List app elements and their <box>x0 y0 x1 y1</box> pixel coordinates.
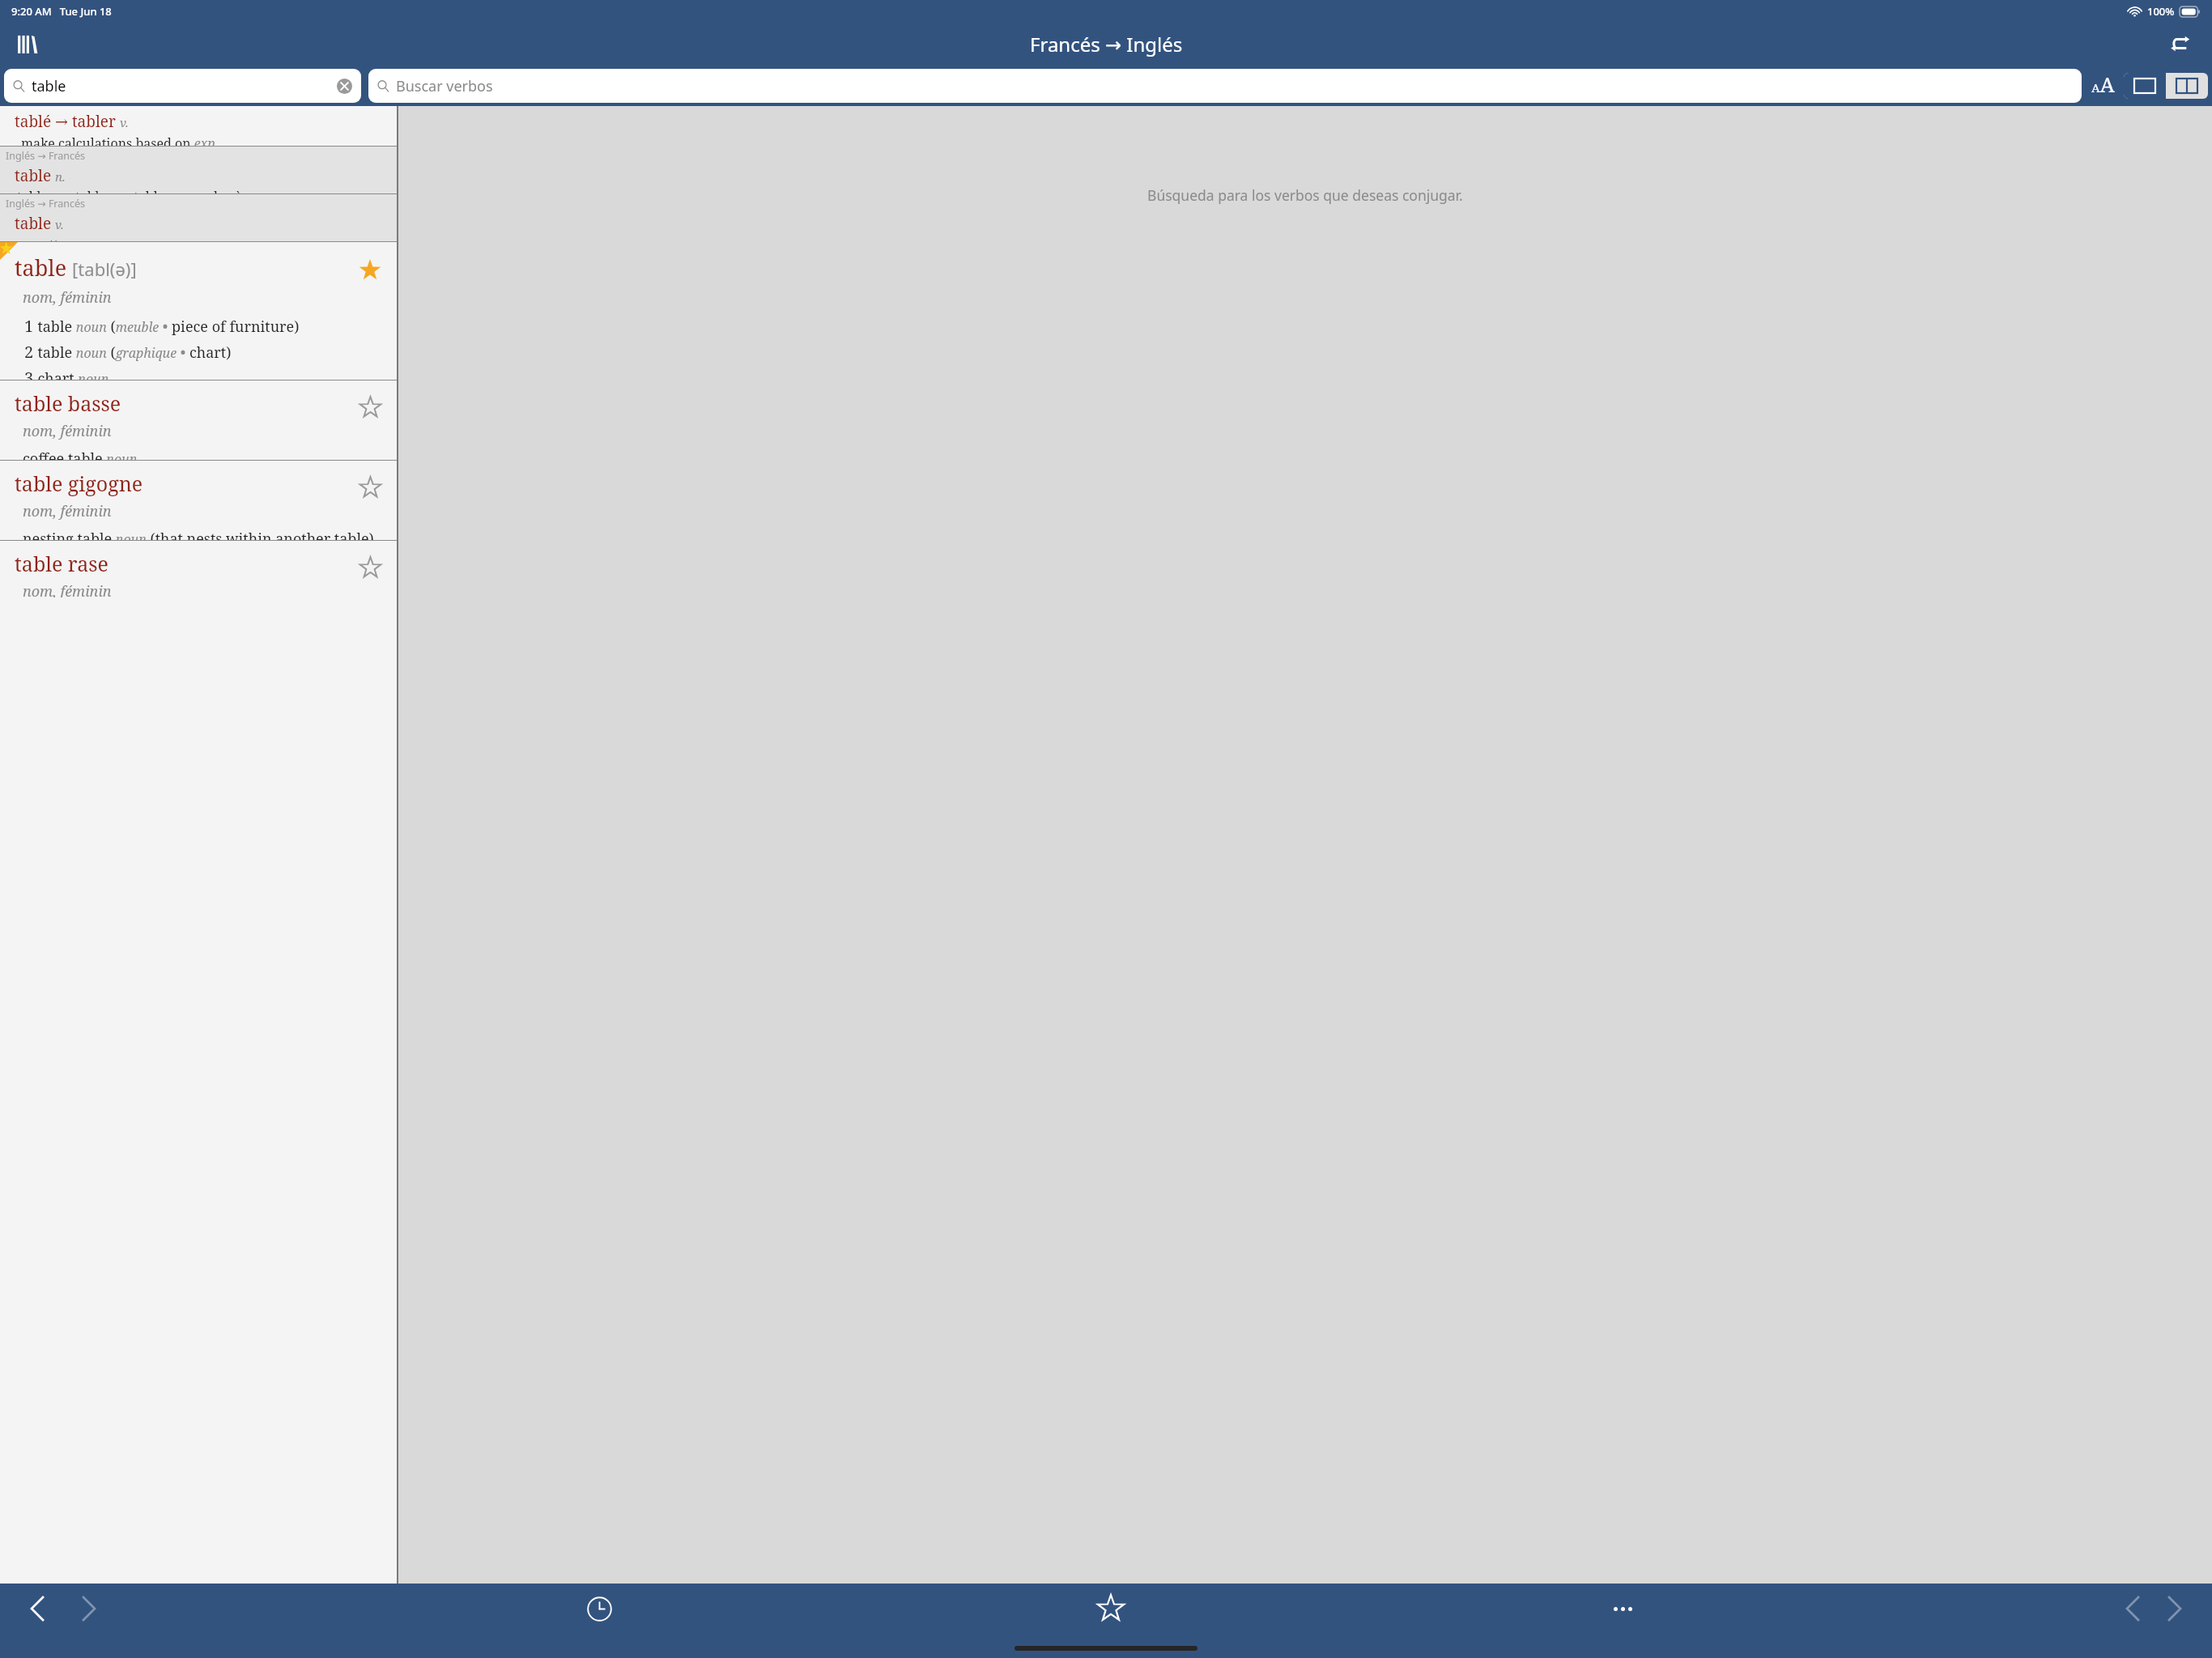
button[interactable]: History <box>576 1586 622 1631</box>
staticText: nom, féminin <box>23 287 112 308</box>
button[interactable]: Inglés → Francés <box>0 194 397 241</box>
button[interactable]: Clear search <box>336 78 352 94</box>
staticText: 1 table noun (meuble • piece of furnitur… <box>24 315 300 337</box>
button[interactable]: table basse <box>0 380 397 460</box>
staticText: table n. f., table n. f., tableau n. m.,… <box>17 188 289 193</box>
staticText: make calculations based on exp. <box>21 134 219 146</box>
button[interactable]: More options <box>1600 1586 1645 1631</box>
staticText: table rase <box>15 550 108 577</box>
button[interactable]: table gigogne <box>0 461 397 540</box>
staticText: 2 table noun (graphique • chart) <box>24 341 232 363</box>
staticText: AA <box>2091 70 2115 98</box>
staticText: 3 chart noun <box>24 367 109 380</box>
button[interactable]: Back <box>16 1588 58 1630</box>
button[interactable]: table <box>4 69 361 103</box>
staticText: table gigogne <box>15 470 143 497</box>
button[interactable]: Next entry <box>2154 1588 2196 1630</box>
button[interactable]: Split pane <box>2166 73 2208 99</box>
button[interactable]: table [tabl(ə)] <box>0 242 397 380</box>
button[interactable]: Inglés → Francés <box>0 147 397 193</box>
staticText: Inglés → Francés <box>6 197 86 210</box>
staticText: table <box>32 76 66 96</box>
staticText: table basse <box>15 389 121 417</box>
staticText: 9:20 AM Tue Jun 18 <box>11 4 112 19</box>
staticText: Inglés → Francés <box>6 149 86 163</box>
button[interactable]: table rase <box>0 541 397 597</box>
staticText: nesting table noun (that nests within an… <box>23 529 374 540</box>
button[interactable]: Favourites <box>1088 1586 1134 1631</box>
staticText: coffee table noun <box>23 449 138 460</box>
button[interactable]: Remove from favourites <box>356 257 384 284</box>
staticText: tablé → tabler v. <box>15 111 129 132</box>
button[interactable]: tablé → tabler v. <box>0 106 397 146</box>
button[interactable]: Forward <box>68 1588 110 1630</box>
staticText: 100% <box>2147 4 2175 19</box>
button[interactable]: Add table basse to favourites <box>356 393 384 421</box>
staticText: table [tabl(ə)] <box>15 253 137 283</box>
button[interactable]: Buscar verbos <box>368 69 2082 103</box>
button[interactable]: Text size <box>2091 69 2115 103</box>
staticText: Búsqueda para los verbos que deseas conj… <box>1147 185 1463 205</box>
staticText: table v. <box>15 213 64 234</box>
staticText: Francés → Inglés <box>1030 31 1183 57</box>
staticText: nom, féminin <box>23 501 112 521</box>
button[interactable]: Add table rase to favourites <box>356 554 384 581</box>
button[interactable]: Previous entry <box>2112 1588 2154 1630</box>
staticText: nom, féminin <box>23 421 112 441</box>
staticText: Buscar verbos <box>396 76 493 96</box>
button[interactable]: Single pane <box>2124 73 2166 99</box>
button[interactable]: Library <box>6 22 50 66</box>
button[interactable]: Swap languages <box>2159 22 2202 66</box>
staticText: table n. <box>15 165 66 186</box>
staticText: nom, féminin <box>23 581 112 597</box>
button[interactable]: Add table gigogne to favourites <box>356 474 384 501</box>
